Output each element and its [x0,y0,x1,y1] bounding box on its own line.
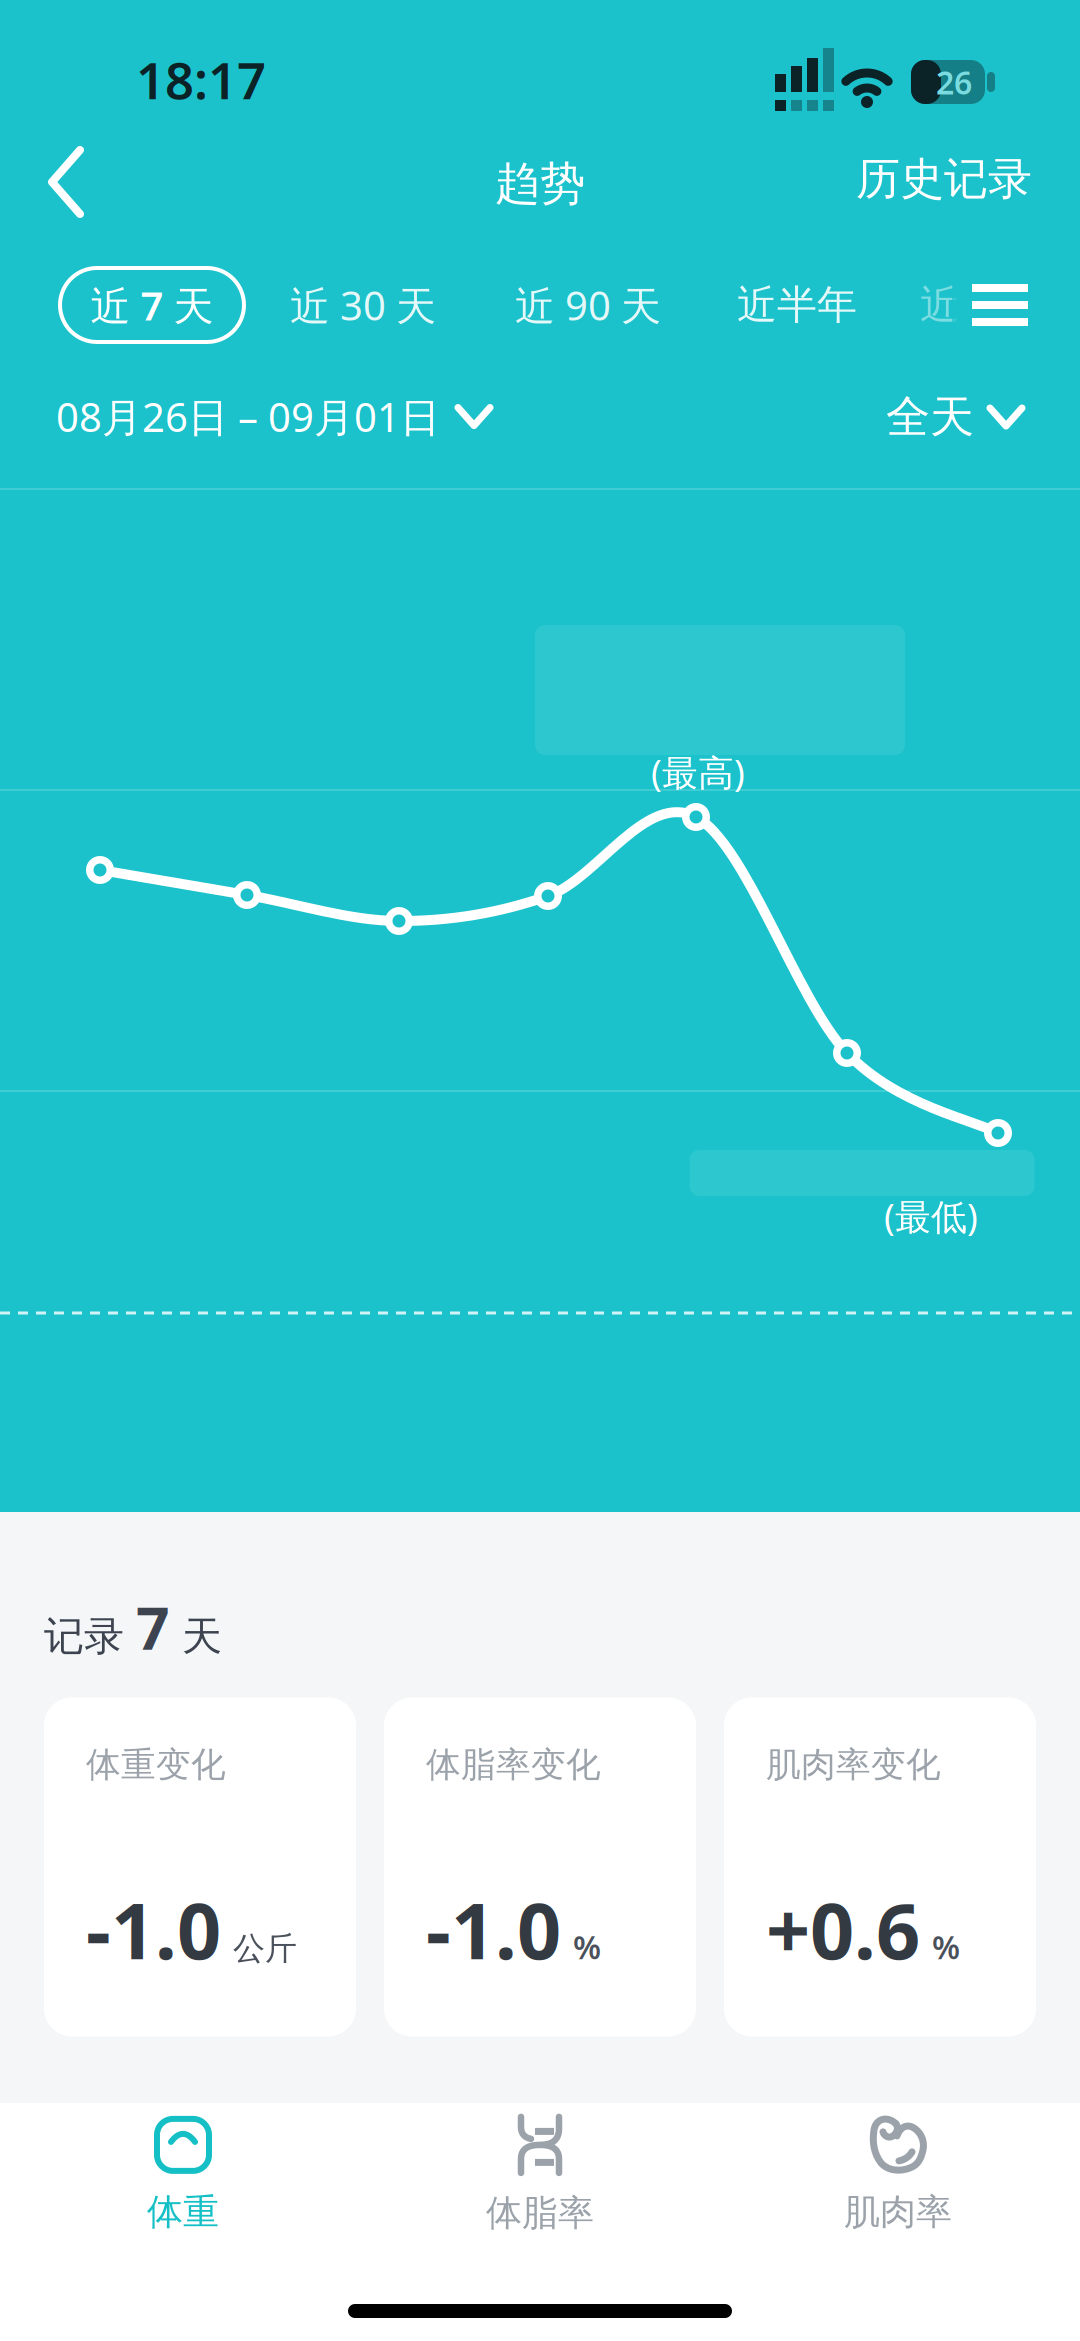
button[interactable]: 肌肉率 [844,2116,952,2234]
staticText: 体重 [147,2190,219,2234]
button[interactable]: 08月26日 – 09月01日 [56,390,492,443]
staticText: (最低) [884,1192,978,1240]
staticText: -1.0 [86,1878,221,1980]
staticText: % [932,1925,960,1968]
button[interactable]: Back [28,142,112,222]
staticText: 肌肉率 [844,2190,952,2234]
staticText: 08月26日 – 09月01日 [56,390,440,443]
staticText: 体脂率变化 [426,1743,601,1786]
button[interactable]: More ranges [972,284,1028,326]
staticText: 体脂率 [486,2191,594,2235]
staticText: (最高) [651,748,745,796]
staticText: 近 7 天 [90,278,213,331]
button[interactable]: 近 90 天 [515,278,661,331]
staticText: 近 90 天 [515,278,661,331]
staticText: 肌肉率变化 [766,1743,941,1786]
staticText: 26 [936,61,972,103]
button[interactable]: 近 7 天 [58,266,246,344]
button[interactable]: 体脂率 [486,2115,594,2235]
staticText: 18:17 [136,46,266,113]
staticText: 近 30 天 [290,278,436,331]
staticText: 记录 [44,1612,136,1661]
staticText: -1.0 [426,1878,561,1980]
staticText: 天 [170,1612,222,1661]
staticText: 公斤 [233,1929,297,1968]
button[interactable]: 全天 [886,390,1024,444]
staticText: 近半年 [737,280,857,329]
staticText: 7 [136,1588,170,1666]
staticText: +0.6 [766,1878,920,1980]
button[interactable]: 近半年 [737,280,857,329]
button[interactable]: 近 30 天 [290,278,436,331]
staticText: 历史记录 [856,152,1032,206]
staticText: % [573,1925,601,1968]
button[interactable]: 历史记录 [856,152,1032,206]
staticText: 近 [920,280,960,329]
staticText: 趋势 [495,156,585,212]
staticText: 全天 [886,390,974,444]
button[interactable]: 体重 [147,2116,219,2234]
staticText: 体重变化 [86,1743,226,1786]
